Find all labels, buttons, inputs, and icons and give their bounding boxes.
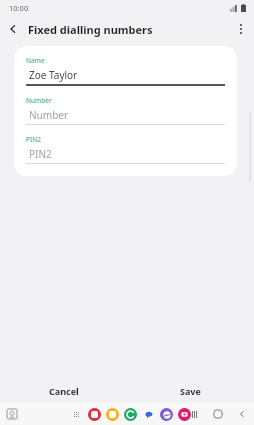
button[interactable]: More options xyxy=(228,16,254,42)
button[interactable]: Save xyxy=(127,379,254,403)
button[interactable]: Back xyxy=(0,16,26,42)
staticText: Number xyxy=(26,96,52,105)
staticText: Fixed dialling numbers xyxy=(28,22,153,37)
button[interactable]: Apps xyxy=(69,407,83,421)
staticText: Save xyxy=(180,385,201,397)
button[interactable]: Back xyxy=(235,407,249,421)
button[interactable]: App xyxy=(124,408,137,421)
staticText: 10:00 xyxy=(9,3,29,13)
staticText: Zoe Taylor xyxy=(29,68,78,82)
button[interactable]: App xyxy=(88,408,101,421)
staticText: PIN2 xyxy=(26,135,42,144)
button[interactable]: App xyxy=(178,408,191,421)
button[interactable]: Cancel xyxy=(0,379,127,403)
button[interactable]: PIN2 xyxy=(26,135,225,164)
button[interactable]: App xyxy=(160,408,173,421)
button[interactable]: Recents xyxy=(187,407,201,421)
button[interactable]: Number xyxy=(26,96,225,125)
staticText: Cancel xyxy=(49,385,79,397)
staticText: Name xyxy=(26,56,45,65)
staticText: PIN2 xyxy=(29,147,52,161)
staticText: Number xyxy=(29,108,69,122)
button[interactable]: Name xyxy=(26,56,225,86)
button[interactable]: Messages xyxy=(142,408,155,421)
button[interactable]: App xyxy=(106,408,119,421)
button[interactable]: Home xyxy=(211,407,225,421)
button[interactable]: Hide keyboard xyxy=(4,406,20,422)
